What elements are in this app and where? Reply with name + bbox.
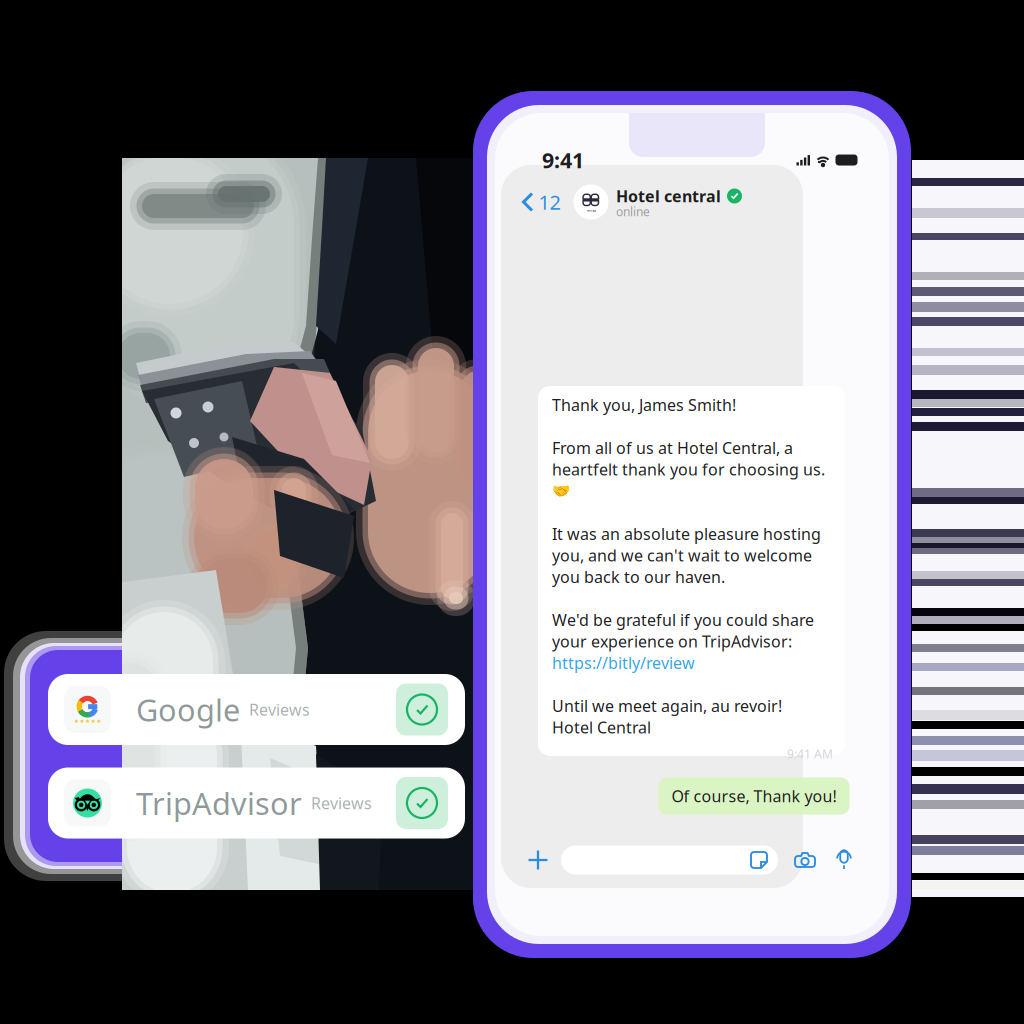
- staticText: From all of us at Hotel Central, a: [552, 437, 793, 458]
- staticText: Reviews: [311, 792, 372, 814]
- staticText: 9:41: [542, 146, 584, 174]
- staticText: Reviews: [249, 699, 310, 720]
- staticText: 9:41 AM: [787, 746, 833, 762]
- button[interactable]: Google: [48, 674, 465, 745]
- staticText: Thank you, James Smith!: [552, 394, 736, 415]
- staticText: your experience on TripAdvisor:: [552, 631, 792, 652]
- staticText: Hotel central: [616, 185, 721, 207]
- staticText: Until we meet again, au revoir!: [552, 695, 782, 716]
- staticText: 🤝: [552, 482, 570, 499]
- staticText: We'd be grateful if you could share: [552, 609, 814, 630]
- button[interactable]: Voice message: [835, 849, 853, 871]
- staticText: TripAdvisor: [136, 783, 302, 823]
- staticText: Hotel Central: [552, 717, 651, 738]
- button[interactable]: Add attachment: [527, 849, 549, 871]
- staticText: online: [616, 203, 650, 219]
- staticText: HOTELS: [586, 209, 595, 212]
- staticText: https://bitly/review: [552, 652, 695, 673]
- staticText: It was an absolute pleasure hosting: [552, 523, 821, 544]
- staticText: you, and we can't wait to welcome: [552, 545, 812, 566]
- staticText: Of course, Thank you!: [671, 785, 836, 807]
- button[interactable]: Camera: [794, 851, 816, 869]
- button[interactable]: 12: [521, 189, 560, 215]
- button[interactable]: TripAdvisor: [48, 767, 465, 838]
- staticText: you back to our haven.: [552, 566, 725, 587]
- button[interactable]: Stickers: [750, 851, 768, 869]
- staticText: heartfelt thank you for choosing us.: [552, 459, 825, 480]
- staticText: 12: [538, 189, 560, 215]
- staticText: Google: [136, 689, 240, 730]
